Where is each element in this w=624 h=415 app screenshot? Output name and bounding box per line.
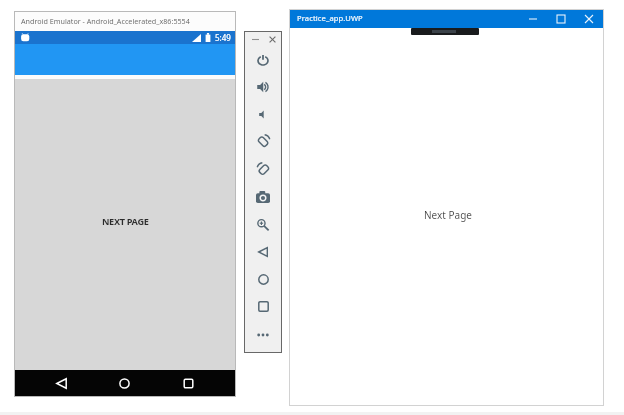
button[interactable]: Minimize (519, 9, 547, 28)
button[interactable]: Home (110, 370, 138, 397)
button[interactable]: Volume down (244, 101, 282, 128)
button[interactable]: Maximize (547, 9, 575, 28)
staticText: Next Page (424, 208, 472, 222)
button[interactable]: Close (264, 32, 281, 47)
staticText: Practice_app.UWP (297, 13, 363, 23)
button[interactable]: Volume up (244, 73, 282, 100)
staticText: NEXT PAGE (102, 215, 149, 228)
button[interactable]: Minimize (247, 32, 264, 47)
button[interactable]: More (244, 321, 282, 348)
button[interactable]: Screenshot (244, 183, 282, 210)
staticText: 5:49 (215, 32, 231, 43)
button[interactable]: Back (47, 370, 75, 397)
button[interactable]: Back (244, 238, 282, 265)
button[interactable]: Rotate right (244, 156, 282, 183)
button[interactable]: Recents (174, 370, 202, 397)
button[interactable]: Close (575, 9, 603, 28)
button[interactable]: Zoom (244, 211, 282, 238)
button[interactable]: Home (244, 266, 282, 293)
button[interactable]: Rotate left (244, 128, 282, 155)
staticText: Android Emulator - Android_Accelerated_x… (21, 16, 190, 26)
button[interactable]: Power (244, 46, 282, 73)
button[interactable]: NEXT PAGE (92, 209, 159, 234)
button[interactable]: Overview (244, 293, 282, 320)
